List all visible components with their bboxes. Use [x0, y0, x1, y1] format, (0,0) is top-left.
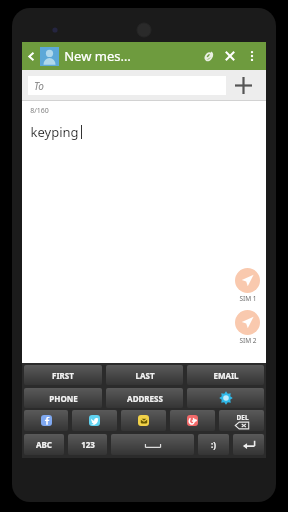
staticText: 123 [81, 439, 95, 450]
staticText: LAST [135, 370, 155, 381]
staticText: EMAIL [213, 370, 239, 381]
staticText: To [34, 79, 44, 93]
button[interactable]: Enter [233, 434, 264, 455]
button[interactable]: To [28, 76, 226, 95]
button[interactable]: Close [219, 42, 241, 70]
button[interactable]: Delete [219, 410, 264, 431]
staticText: FIRST [52, 370, 74, 381]
button[interactable]: Email [121, 410, 166, 431]
button[interactable]: SIM 2 [235, 310, 260, 345]
button[interactable]: ADDRESS [106, 388, 183, 408]
staticText: New mes… [64, 47, 131, 65]
staticText: keyping [30, 123, 79, 141]
button[interactable]: More options [241, 42, 263, 70]
button[interactable]: FIRST [24, 365, 102, 385]
staticText: 8/160 [30, 106, 49, 116]
button[interactable]: PHONE [24, 388, 102, 408]
button[interactable]: Add recipient [226, 70, 260, 100]
button[interactable]: EMAIL [187, 365, 264, 385]
staticText: ABC [36, 439, 52, 450]
staticText: DEL [236, 413, 249, 422]
button[interactable]: 123 [68, 434, 107, 455]
button[interactable]: Back [22, 42, 40, 70]
button[interactable]: Contact [40, 47, 59, 66]
staticText: PHONE [49, 393, 78, 404]
button[interactable]: SIM 1 [235, 268, 260, 303]
staticText: ADDRESS [127, 393, 163, 404]
button[interactable]: ABC [24, 434, 64, 455]
button[interactable]: Settings [187, 388, 264, 408]
staticText: SIM 2 [239, 336, 257, 345]
button[interactable]: Space [111, 434, 194, 455]
button[interactable]: :) [198, 434, 229, 455]
button[interactable]: Google Plus [170, 410, 215, 431]
button[interactable]: Facebook [24, 410, 68, 431]
staticText: :) [211, 439, 216, 450]
staticText: SIM 1 [239, 294, 257, 303]
button[interactable]: Attach [197, 42, 219, 70]
button[interactable]: LAST [106, 365, 183, 385]
button[interactable]: Twitter [72, 410, 117, 431]
